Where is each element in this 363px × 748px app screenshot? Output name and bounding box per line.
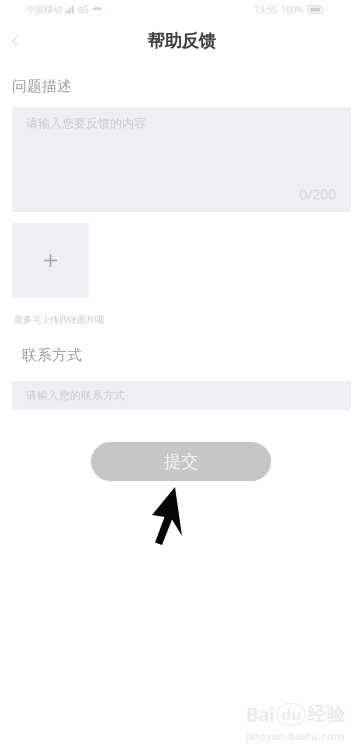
staticText: 请输入您要反馈的内容 (26, 116, 146, 131)
staticText: du (281, 704, 301, 725)
staticText: 请输入您的联系方式 (26, 389, 125, 402)
staticText: jingyan.baidu.com (246, 729, 344, 743)
staticText: 联系方式 (22, 346, 82, 364)
staticText: 提交 (164, 451, 198, 472)
button[interactable]: Add photo (12, 223, 89, 298)
staticText: 问题描述 (12, 77, 72, 95)
staticText: 帮助反馈 (147, 30, 215, 52)
staticText: 最多可上传四张图片哦 (14, 314, 104, 325)
button[interactable]: Back (0, 28, 30, 54)
staticText: 100% (281, 3, 304, 16)
staticText: 中国移动 (26, 4, 62, 15)
staticText: 4G (77, 3, 89, 16)
button[interactable]: 提交 (91, 442, 271, 481)
staticText: 13:55 (254, 3, 277, 16)
staticText: Bai (246, 702, 275, 727)
staticText: 0/200 (299, 184, 336, 203)
staticText: 经验 (307, 703, 345, 726)
